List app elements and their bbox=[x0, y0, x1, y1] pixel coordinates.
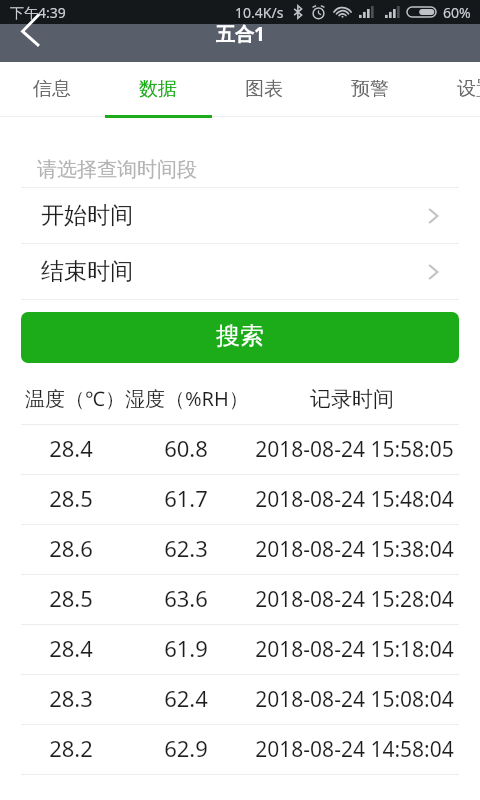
button[interactable]: 28.6 bbox=[0, 525, 480, 574]
button[interactable]: 28.4 bbox=[0, 425, 480, 474]
staticText: 63.6 bbox=[141, 583, 231, 613]
staticText: 61.9 bbox=[141, 633, 231, 663]
staticText: 28.5 bbox=[21, 483, 121, 513]
button[interactable]: 28.5 bbox=[0, 575, 480, 624]
staticText: 结束时间 bbox=[41, 257, 133, 286]
staticText: 设置 bbox=[457, 77, 480, 101]
button[interactable]: 28.5 bbox=[0, 475, 480, 524]
staticText: 信息 bbox=[33, 77, 71, 101]
staticText: 28.4 bbox=[21, 433, 121, 463]
staticText: 数据 bbox=[139, 77, 177, 101]
staticText: 2018-08-24 15:18:04 bbox=[252, 635, 457, 664]
button[interactable]: 搜索 bbox=[21, 312, 459, 363]
button[interactable]: 图表 bbox=[211, 62, 317, 116]
staticText: 62.4 bbox=[141, 683, 231, 713]
button[interactable]: Back bbox=[0, 24, 54, 62]
staticText: 2018-08-24 15:08:04 bbox=[252, 685, 457, 714]
staticText: 五合1 bbox=[216, 21, 265, 47]
staticText: 预警 bbox=[351, 77, 389, 101]
staticText: 10.4K/s bbox=[235, 3, 284, 22]
staticText: 28.3 bbox=[21, 683, 121, 713]
staticText: 62.9 bbox=[141, 733, 231, 763]
staticText: 60.8 bbox=[141, 433, 231, 463]
button[interactable]: 28.4 bbox=[0, 625, 480, 674]
staticText: 2018-08-24 15:48:04 bbox=[252, 485, 457, 514]
staticText: 28.2 bbox=[21, 733, 121, 763]
button[interactable]: 28.3 bbox=[0, 675, 480, 724]
button[interactable]: 数据 bbox=[105, 62, 211, 116]
staticText: 60% bbox=[443, 3, 471, 22]
staticText: 请选择查询时间段 bbox=[37, 157, 197, 182]
staticText: 搜索 bbox=[216, 321, 264, 351]
staticText: 61.7 bbox=[141, 483, 231, 513]
staticText: 下午4:39 bbox=[10, 3, 66, 22]
button[interactable]: 设置 bbox=[423, 62, 480, 116]
button[interactable]: 信息 bbox=[0, 62, 105, 116]
staticText: 记录时间 bbox=[310, 386, 394, 412]
staticText: 28.4 bbox=[21, 633, 121, 663]
staticText: 2018-08-24 15:38:04 bbox=[252, 535, 457, 564]
staticText: 图表 bbox=[245, 77, 283, 101]
staticText: 62.3 bbox=[141, 533, 231, 563]
staticText: 2018-08-24 14:58:04 bbox=[252, 735, 457, 764]
staticText: 28.6 bbox=[21, 533, 121, 563]
staticText: 2018-08-24 15:28:04 bbox=[252, 585, 457, 614]
staticText: 温度（℃）湿度（%RH） bbox=[25, 385, 249, 412]
staticText: 开始时间 bbox=[41, 201, 133, 230]
button[interactable]: 开始时间 bbox=[0, 188, 480, 243]
staticText: 28.5 bbox=[21, 583, 121, 613]
button[interactable]: 28.2 bbox=[0, 725, 480, 774]
button[interactable]: 结束时间 bbox=[0, 244, 480, 299]
staticText: 2018-08-24 15:58:05 bbox=[252, 435, 457, 464]
button[interactable]: 预警 bbox=[317, 62, 423, 116]
